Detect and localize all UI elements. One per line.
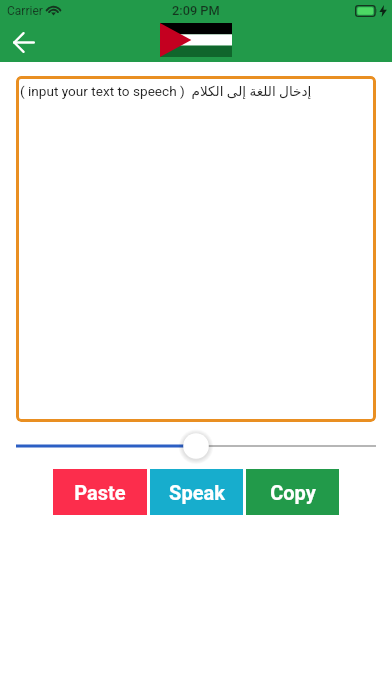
staticText: Paste (74, 481, 126, 504)
button[interactable]: Speak (150, 469, 243, 515)
staticText: 2:09 PM (172, 3, 220, 18)
button[interactable]: Back (6, 24, 42, 60)
button[interactable]: Speed slider (0, 430, 392, 462)
staticText: Copy (270, 481, 316, 504)
staticText: Speak (169, 481, 225, 504)
staticText: ‭( input your text to speech )‬ ‫إدخال ا… (20, 83, 376, 99)
button[interactable]: Copy (246, 469, 339, 515)
button[interactable]: Paste (53, 469, 147, 515)
staticText: Carrier (7, 4, 43, 18)
button[interactable]: ‭( input your text to speech )‬ ‫إدخال ا… (16, 76, 376, 422)
